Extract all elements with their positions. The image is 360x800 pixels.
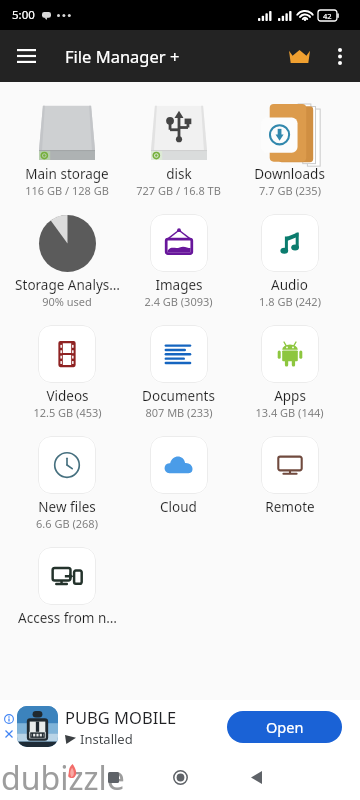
staticText: 42 — [323, 11, 332, 21]
staticText: Videos — [46, 387, 89, 405]
staticText: Main storage — [25, 165, 109, 183]
button[interactable]: Remote — [234, 415, 345, 516]
button[interactable]: Home — [160, 757, 200, 797]
button[interactable]: Navigation menu — [0, 30, 52, 82]
staticText: Open — [266, 717, 304, 737]
button[interactable]: Premium — [278, 30, 320, 82]
staticText: disk — [166, 165, 192, 183]
button[interactable]: Cloud — [123, 415, 234, 516]
staticText: 116 GB / 128 GB — [25, 183, 109, 198]
staticText: Apps — [274, 387, 306, 405]
button[interactable]: Apps — [234, 304, 345, 420]
staticText: 6.6 GB (268) — [36, 516, 98, 531]
staticText: File Manager + — [65, 45, 180, 67]
button[interactable]: More options — [320, 30, 360, 82]
staticText: 12.5 GB (453) — [33, 405, 102, 420]
button[interactable]: Access from n… — [11, 526, 123, 627]
button[interactable]: Images — [123, 193, 234, 309]
staticText: PUBG MOBILE — [65, 706, 177, 728]
staticText: Installed — [80, 730, 133, 748]
staticText: 727 GB / 16.8 TB — [136, 183, 221, 198]
staticText: Cloud — [160, 498, 197, 516]
button[interactable]: Back — [236, 757, 276, 797]
staticText: Storage Analys… — [15, 276, 120, 294]
staticText: dubizzle — [1, 756, 125, 800]
button[interactable]: Storage Analys… — [11, 193, 123, 309]
staticText: 2.4 GB (3093) — [144, 294, 213, 309]
staticText: Audio — [271, 276, 308, 294]
staticText: Images — [155, 276, 203, 294]
staticText: 90% used — [42, 294, 92, 309]
button[interactable]: Documents — [123, 304, 234, 420]
staticText: 1.8 GB (242) — [259, 294, 321, 309]
staticText: Downloads — [254, 165, 325, 183]
button[interactable]: Videos — [11, 304, 123, 420]
button[interactable]: Recent apps — [93, 757, 133, 797]
button[interactable]: New files — [11, 415, 123, 531]
staticText: New files — [38, 498, 96, 516]
button[interactable]: Open — [227, 711, 342, 743]
staticText: 807 MB (233) — [145, 405, 213, 420]
button[interactable]: Main storage — [11, 82, 123, 198]
staticText: Documents — [142, 387, 215, 405]
button[interactable]: disk — [123, 82, 234, 198]
staticText: 13.4 GB (144) — [255, 405, 324, 420]
staticText: Remote — [265, 498, 315, 516]
staticText: Access from n… — [18, 609, 117, 627]
staticText: 5:00 — [12, 7, 35, 23]
staticText: 7.7 GB (235) — [259, 183, 321, 198]
button[interactable]: Downloads — [234, 82, 345, 198]
button[interactable]: Audio — [234, 193, 345, 309]
